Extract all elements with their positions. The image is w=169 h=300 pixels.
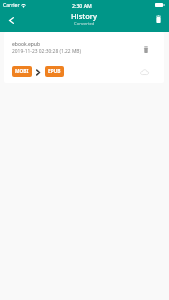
staticText: ebook.epub bbox=[12, 41, 41, 48]
staticText: Carrier bbox=[3, 2, 20, 9]
button[interactable]: Delete item bbox=[136, 42, 156, 56]
staticText: EPUB bbox=[48, 68, 61, 75]
button[interactable]: EPUB bbox=[45, 66, 64, 77]
staticText: Converted bbox=[74, 21, 95, 27]
staticText: 2019-11-23 02:30:28 (1.22 MB) bbox=[12, 48, 82, 55]
button[interactable]: Back bbox=[0, 10, 22, 32]
staticText: 2:30 AM bbox=[72, 2, 92, 9]
button[interactable]: Clear history bbox=[147, 8, 169, 30]
staticText: MOBI bbox=[15, 68, 29, 75]
button[interactable]: MOBI bbox=[12, 66, 32, 77]
staticText: History bbox=[71, 11, 97, 21]
button[interactable]: ebook.epub bbox=[4, 32, 164, 83]
button[interactable]: Download bbox=[134, 65, 154, 79]
